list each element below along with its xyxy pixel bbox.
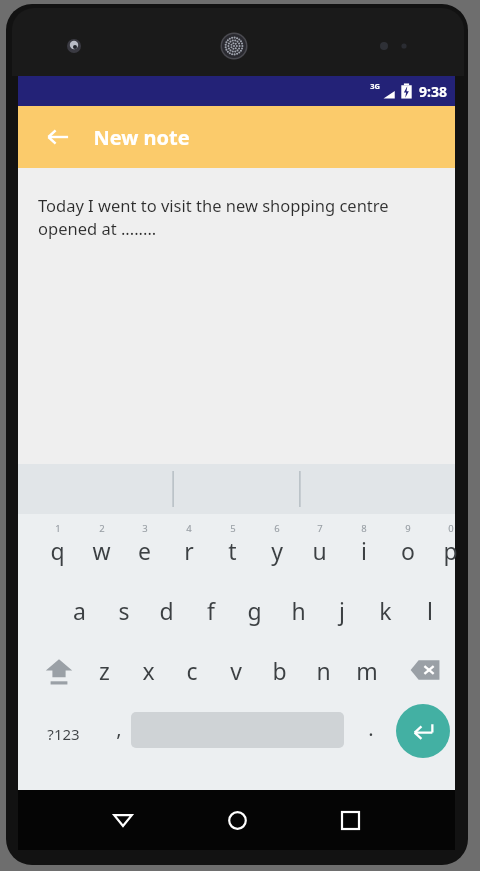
- staticText: e: [138, 535, 151, 566]
- button[interactable]: ?123: [32, 706, 94, 762]
- button[interactable]: .: [352, 706, 390, 762]
- button[interactable]: 6: [255, 516, 298, 578]
- button[interactable]: 1: [36, 516, 79, 578]
- staticText: f: [207, 595, 215, 626]
- staticText: 6: [274, 522, 280, 535]
- staticText: k: [379, 595, 392, 626]
- staticText: 5: [230, 522, 236, 535]
- button[interactable]: 2: [80, 516, 123, 578]
- staticText: g: [247, 595, 262, 626]
- staticText: 7: [317, 522, 323, 535]
- staticText: 8: [361, 522, 367, 535]
- staticText: h: [291, 595, 306, 626]
- button[interactable]: Shift: [36, 642, 82, 698]
- button[interactable]: Backspace: [402, 642, 450, 698]
- staticText: 1: [55, 522, 61, 535]
- button[interactable]: 4: [167, 516, 210, 578]
- button[interactable]: 3: [123, 516, 166, 578]
- staticText: v: [230, 655, 242, 686]
- staticText: ,: [116, 715, 122, 742]
- staticText: d: [159, 595, 174, 626]
- staticText: b: [272, 655, 287, 686]
- staticText: Today I went to visit the new shopping c…: [38, 194, 428, 240]
- staticText: 3: [142, 522, 148, 535]
- staticText: .: [368, 715, 374, 742]
- button[interactable]: 0: [429, 516, 472, 578]
- button[interactable]: 8: [342, 516, 385, 578]
- button[interactable]: f: [189, 581, 232, 639]
- button[interactable]: Today I went to visit the new shopping c…: [18, 168, 455, 464]
- staticText: a: [73, 595, 86, 626]
- button[interactable]: s: [102, 581, 145, 639]
- staticText: 3G: [370, 81, 380, 91]
- staticText: w: [92, 535, 111, 566]
- button[interactable]: d: [145, 581, 188, 639]
- staticText: p: [443, 535, 458, 566]
- staticText: l: [427, 595, 433, 626]
- staticText: ?123: [47, 724, 80, 744]
- button[interactable]: j: [320, 581, 363, 639]
- button[interactable]: Recents: [327, 797, 373, 843]
- staticText: 2: [99, 522, 105, 535]
- button[interactable]: m: [345, 642, 388, 698]
- staticText: t: [228, 535, 237, 566]
- staticText: j: [339, 595, 345, 626]
- staticText: x: [142, 655, 155, 686]
- staticText: r: [184, 535, 194, 566]
- button[interactable]: h: [277, 581, 320, 639]
- button[interactable]: Back: [38, 117, 78, 157]
- button[interactable]: x: [127, 642, 170, 698]
- button[interactable]: n: [302, 642, 345, 698]
- button[interactable]: Back: [100, 797, 146, 843]
- button[interactable]: 7: [298, 516, 341, 578]
- button[interactable]: 5: [211, 516, 254, 578]
- staticText: New note: [93, 124, 190, 151]
- button[interactable]: a: [58, 581, 101, 639]
- staticText: o: [401, 535, 415, 566]
- button[interactable]: v: [214, 642, 257, 698]
- staticText: 0: [448, 522, 454, 535]
- button[interactable]: Enter: [396, 704, 450, 758]
- staticText: 9: [405, 522, 411, 535]
- button[interactable]: ,: [100, 706, 138, 762]
- button[interactable]: g: [233, 581, 276, 639]
- button[interactable]: 9: [386, 516, 429, 578]
- staticText: s: [118, 595, 130, 626]
- staticText: q: [50, 535, 65, 566]
- button[interactable]: l: [408, 581, 451, 639]
- staticText: c: [186, 655, 198, 686]
- staticText: n: [316, 655, 331, 686]
- button[interactable]: b: [258, 642, 301, 698]
- staticText: i: [361, 535, 367, 566]
- button[interactable]: Home: [214, 797, 260, 843]
- staticText: m: [356, 655, 378, 686]
- button[interactable]: k: [364, 581, 407, 639]
- staticText: y: [271, 535, 283, 566]
- staticText: z: [99, 655, 110, 686]
- staticText: 9:38: [419, 82, 447, 101]
- button[interactable]: z: [83, 642, 126, 698]
- button[interactable]: c: [170, 642, 213, 698]
- staticText: u: [312, 535, 327, 566]
- staticText: 4: [186, 522, 192, 535]
